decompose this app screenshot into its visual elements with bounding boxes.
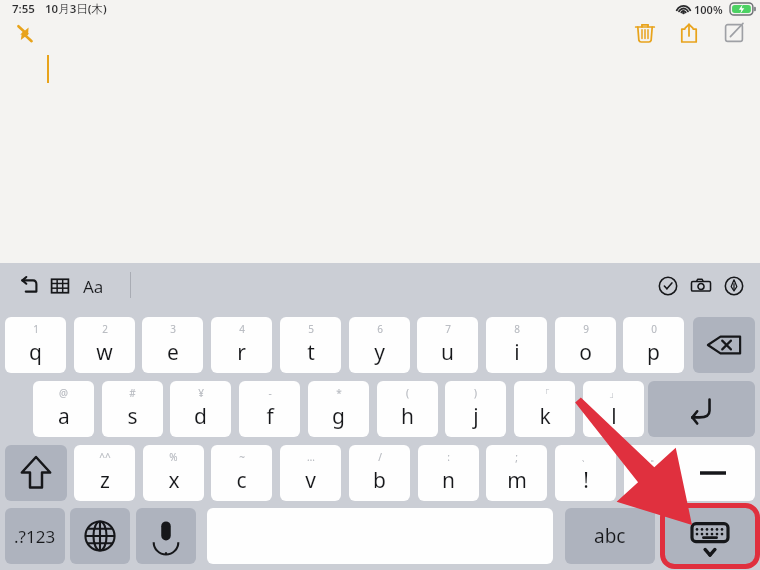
staticText: 、 (581, 451, 591, 464)
staticText: ? (650, 466, 660, 495)
button[interactable]: ( (377, 381, 438, 437)
button[interactable]: Delete (630, 18, 660, 48)
staticText: l (611, 402, 617, 431)
staticText: 「 (540, 387, 550, 400)
button[interactable]: # (102, 381, 163, 437)
button[interactable]: Key (5, 445, 67, 501)
staticText: t (307, 338, 315, 367)
button[interactable]: New note (719, 18, 749, 48)
button[interactable]: 8 (486, 317, 547, 373)
staticText: o (579, 338, 592, 367)
staticText: / (378, 450, 382, 464)
button[interactable]: Key (693, 317, 755, 373)
button[interactable]: 7 (417, 317, 478, 373)
button[interactable]: .?123 (5, 508, 65, 564)
staticText: j (473, 402, 479, 431)
button[interactable]: Key (648, 381, 755, 437)
staticText: v (305, 466, 316, 495)
button[interactable]: 」 (583, 381, 644, 437)
staticText: g (332, 402, 345, 431)
staticText: ~ (239, 450, 245, 464)
staticText: 100% (694, 2, 723, 17)
button[interactable]: Key (70, 508, 130, 564)
staticText: 。 (650, 451, 660, 464)
button[interactable]: @ (33, 381, 94, 437)
button[interactable]: 0 (623, 317, 684, 373)
staticText: 0 (651, 322, 657, 336)
button[interactable]: 9 (555, 317, 616, 373)
button[interactable]: Checklist (654, 272, 682, 300)
button[interactable]: ; (486, 445, 547, 501)
button[interactable]: / (349, 445, 410, 501)
button[interactable]: 。 (624, 445, 685, 501)
staticText: # (129, 386, 136, 400)
staticText: c (236, 466, 247, 495)
button[interactable]: ¥ (170, 381, 231, 437)
staticText: r (237, 338, 246, 367)
staticText: 2 (102, 322, 108, 336)
staticText: 9 (583, 322, 589, 336)
staticText: x (168, 466, 180, 495)
button[interactable]: * (308, 381, 369, 437)
staticText: p (647, 338, 660, 367)
staticText: k (539, 402, 551, 431)
button[interactable]: 4 (211, 317, 272, 373)
button[interactable]: Share (674, 18, 704, 48)
button[interactable]: ~ (211, 445, 272, 501)
button[interactable]: 「 (514, 381, 575, 437)
button[interactable]: Markup (720, 272, 748, 300)
button[interactable]: Key (665, 508, 755, 564)
button[interactable]: - (239, 381, 300, 437)
button[interactable]: Key (136, 508, 196, 564)
staticText: ^^ (99, 450, 111, 464)
staticText: m (507, 466, 527, 495)
staticText: * (336, 386, 342, 400)
staticText: - (268, 386, 272, 400)
staticText: f (266, 402, 274, 431)
staticText: 10月3日(木) (45, 1, 107, 17)
staticText: : (447, 450, 450, 464)
button[interactable]: 1 (5, 317, 66, 373)
button[interactable]: Undo (14, 272, 42, 300)
staticText: h (401, 402, 414, 431)
button[interactable]: … (280, 445, 341, 501)
button[interactable]: Collapse (10, 19, 40, 49)
staticText: q (29, 338, 42, 367)
staticText: 1 (33, 322, 39, 336)
button[interactable]: 、 (555, 445, 616, 501)
button[interactable]: 5 (280, 317, 341, 373)
staticText: 」 (609, 387, 619, 400)
staticText: z (100, 466, 110, 495)
button[interactable]: % (143, 445, 204, 501)
staticText: ! (583, 466, 589, 495)
staticText: 8 (514, 322, 520, 336)
staticText: ; (515, 450, 518, 464)
button[interactable]: : (418, 445, 479, 501)
staticText: Aa (83, 275, 104, 298)
staticText: y (374, 338, 385, 367)
staticText: a (58, 402, 70, 431)
staticText: u (441, 338, 454, 367)
button[interactable]: 3 (142, 317, 203, 373)
staticText: n (442, 466, 455, 495)
staticText: ) (474, 386, 477, 400)
staticText: d (194, 402, 207, 431)
button[interactable]: 2 (74, 317, 135, 373)
staticText: … (307, 450, 315, 464)
button[interactable]: Aa (78, 271, 108, 301)
button[interactable]: ^^ (74, 445, 135, 501)
button[interactable]: Camera (687, 272, 715, 300)
button[interactable]: abc (565, 508, 655, 564)
staticText: .?123 (14, 525, 56, 548)
staticText: 7 (445, 322, 451, 336)
button[interactable]: ) (445, 381, 506, 437)
button[interactable]: Key (671, 445, 755, 501)
staticText: w (96, 338, 113, 367)
staticText: b (373, 466, 386, 495)
button[interactable]: Table (46, 272, 74, 300)
staticText: 7:55 (12, 1, 35, 17)
button[interactable]: 6 (349, 317, 410, 373)
staticText: @ (59, 386, 68, 400)
staticText: e (167, 338, 179, 367)
